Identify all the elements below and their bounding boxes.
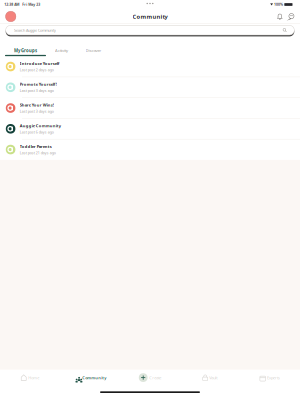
button[interactable]: Vault [180, 370, 240, 386]
staticText: Promote Yourself! [20, 81, 57, 87]
button[interactable]: Auggie Community [0, 119, 300, 139]
button[interactable]: Create [120, 370, 180, 386]
button[interactable]: Toddler Parents [0, 139, 300, 160]
staticText: 12:38 AM Fri May 23 [4, 2, 40, 7]
button[interactable]: Introduce Yourself [0, 56, 300, 77]
button[interactable]: Home [0, 370, 60, 386]
staticText: Last post 6 days ago [20, 130, 54, 135]
staticText: Discover [85, 48, 101, 53]
staticText: Share Your Wins! [20, 102, 54, 108]
button[interactable]: Share Your Wins! [0, 98, 300, 118]
staticText: Last post 3 days ago [20, 88, 54, 93]
staticText: Last post 2 days ago [20, 67, 54, 72]
staticText: Toddler Parents [20, 144, 52, 149]
staticText: Auggie Community [20, 123, 61, 128]
staticText: Community [82, 375, 106, 380]
button[interactable]: Your profile [5, 10, 17, 23]
button[interactable]: Search Auggie Community [0, 24, 300, 37]
button[interactable]: My Groups [5, 46, 46, 56]
staticText: Activity [55, 48, 68, 53]
button[interactable]: Community [60, 370, 120, 386]
staticText: Last post 21 days ago [20, 150, 56, 155]
staticText: Search Auggie Community [14, 28, 56, 33]
staticText: Vault [209, 375, 217, 380]
staticText: Experts [267, 375, 280, 380]
staticText: Introduce Yourself [20, 61, 60, 66]
staticText: Community [132, 13, 167, 20]
staticText: My Groups [14, 48, 37, 53]
button[interactable]: Experts [240, 370, 300, 386]
button[interactable]: Activity [46, 46, 77, 56]
button[interactable]: Messages [285, 10, 297, 22]
button[interactable]: Promote Yourself! [0, 77, 300, 97]
staticText: Create [149, 375, 161, 380]
button[interactable]: Notifications [274, 10, 285, 22]
button[interactable]: Discover [77, 46, 110, 56]
staticText: Home [28, 375, 39, 380]
staticText: Last post 3 days ago [20, 109, 54, 114]
staticText: 100% [274, 2, 283, 7]
